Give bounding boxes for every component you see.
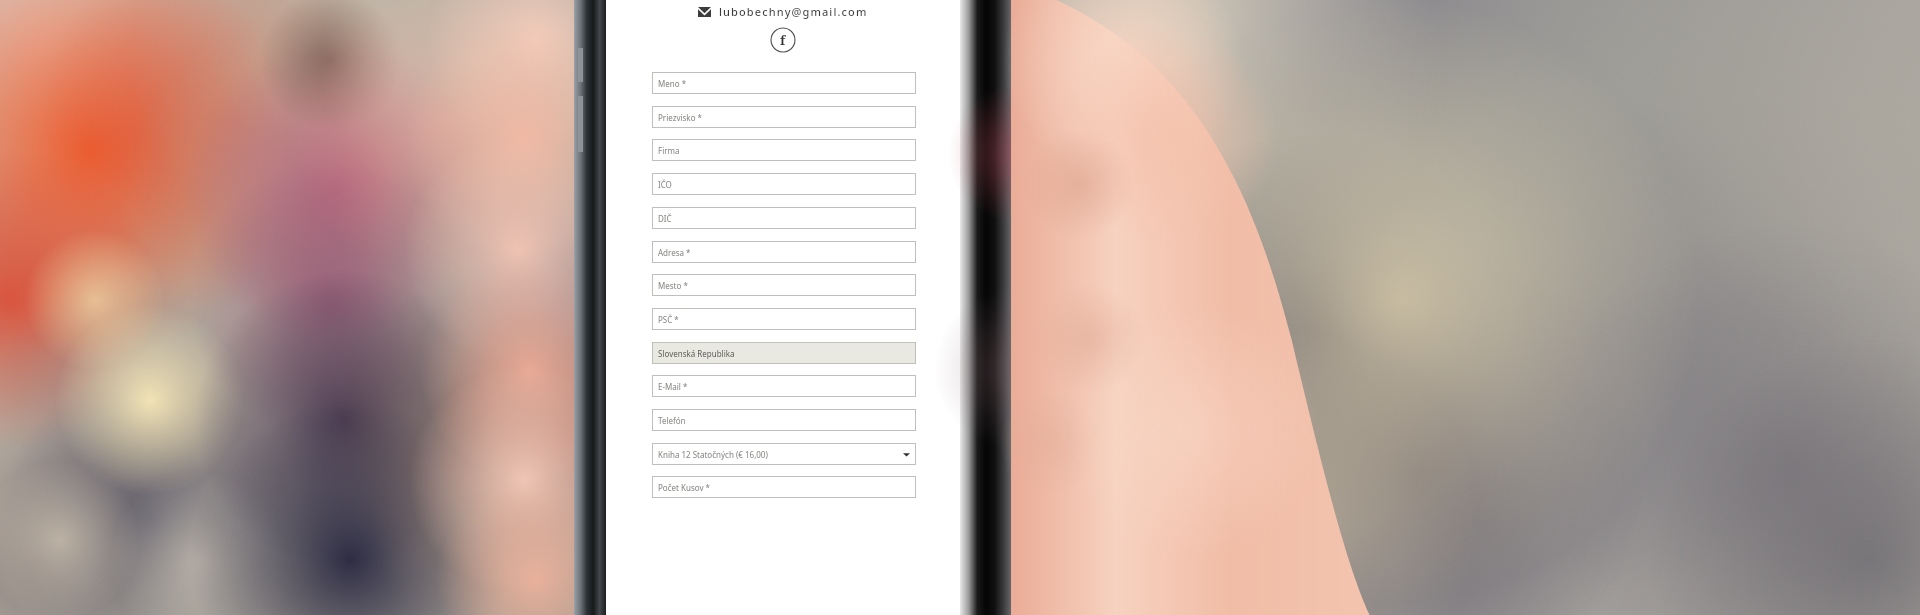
button[interactable]: lubobechny@gmail.com — [606, 2, 960, 21]
staticText: Meno * — [658, 78, 910, 89]
staticText: lubobechny@gmail.com — [719, 4, 868, 19]
staticText: Telefón — [658, 415, 910, 426]
button[interactable]: DIČ — [652, 207, 916, 229]
button[interactable]: E-Mail * — [652, 375, 916, 397]
button[interactable]: Adresa * — [652, 241, 916, 263]
staticText: IČO — [658, 179, 910, 190]
staticText: Priezvisko * — [658, 112, 910, 123]
staticText: Mesto * — [658, 280, 910, 291]
button[interactable]: Slovenská Republika — [652, 342, 916, 364]
staticText: Firma — [658, 145, 910, 156]
staticText: Adresa * — [658, 247, 910, 258]
button[interactable]: Facebook — [770, 27, 796, 53]
staticText: PSČ * — [658, 314, 910, 325]
staticText: Kniha 12 Statočných (€ 16,00) — [658, 449, 903, 460]
button[interactable]: Kniha 12 Statočných (€ 16,00) — [652, 443, 916, 465]
staticText: DIČ — [658, 213, 910, 224]
button[interactable]: Počet Kusov * — [652, 476, 916, 498]
button[interactable]: Meno * — [652, 72, 916, 94]
button[interactable]: Mesto * — [652, 274, 916, 296]
button[interactable]: Priezvisko * — [652, 106, 916, 128]
staticText: E-Mail * — [658, 381, 910, 392]
staticText: f — [780, 31, 786, 49]
staticText: Počet Kusov * — [658, 482, 910, 493]
button[interactable]: Firma — [652, 139, 916, 161]
button[interactable]: Telefón — [652, 409, 916, 431]
staticText: Slovenská Republika — [658, 348, 910, 359]
button[interactable]: PSČ * — [652, 308, 916, 330]
button[interactable]: IČO — [652, 173, 916, 195]
